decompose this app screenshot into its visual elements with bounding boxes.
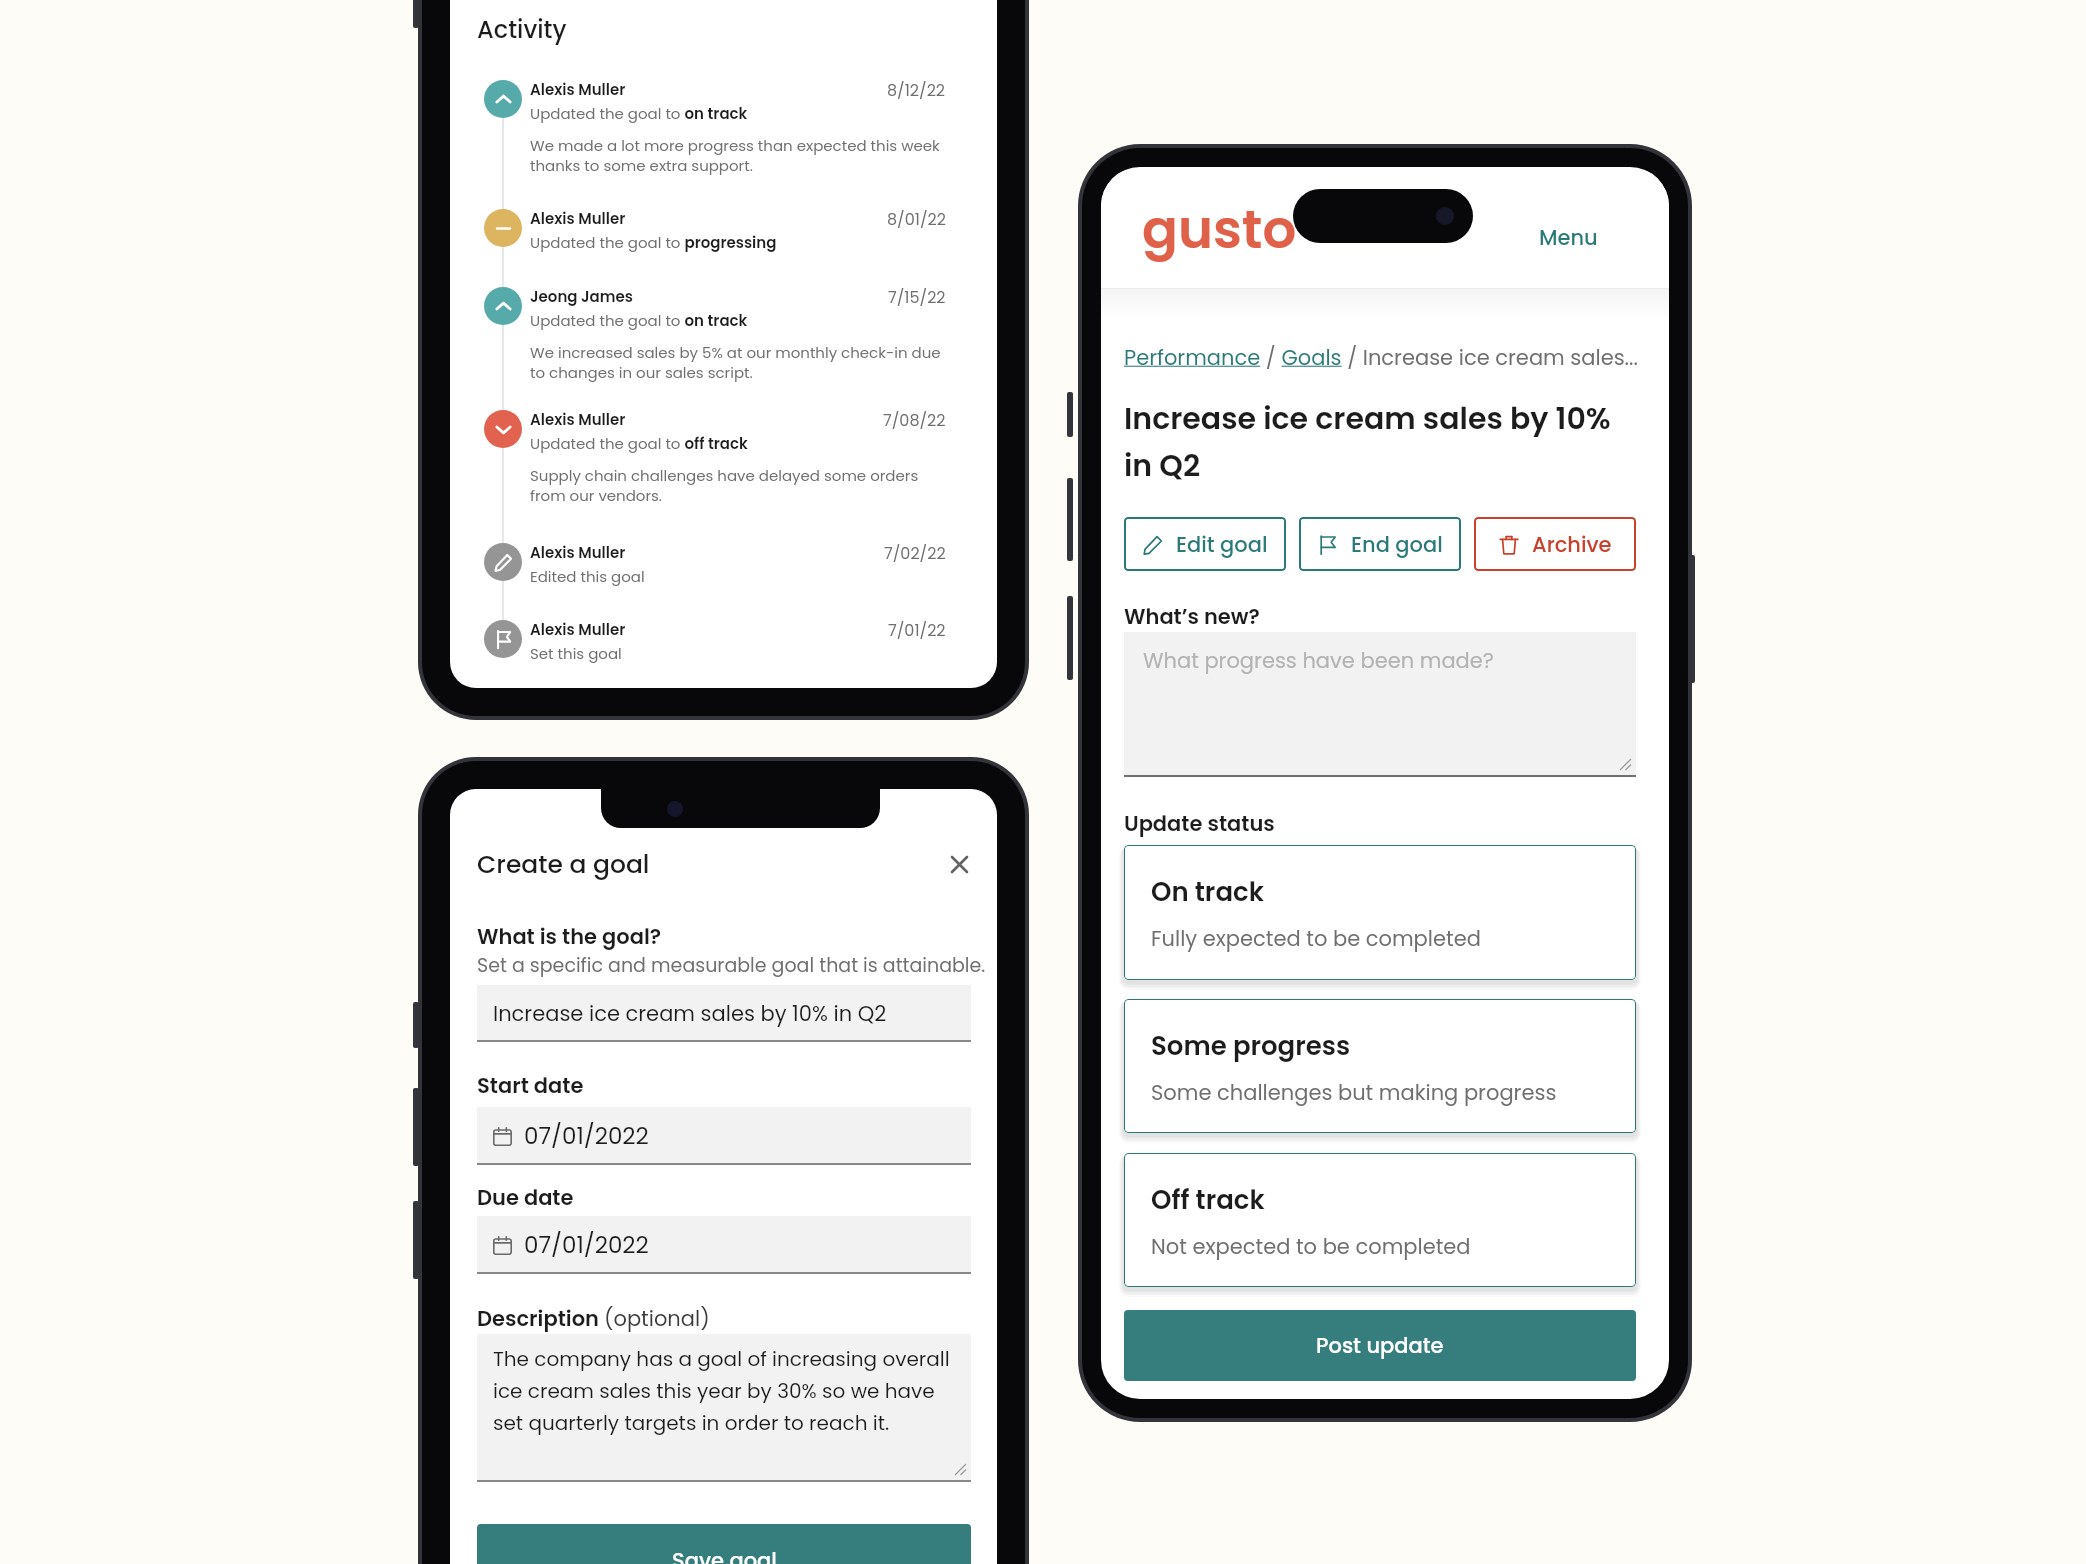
button[interactable]: 07/01/2022 — [477, 1216, 971, 1274]
staticText: The company has a goal of increasing ove… — [493, 1345, 961, 1437]
staticText: Some challenges but making progress — [1151, 1078, 1557, 1107]
staticText: Archive — [1532, 530, 1612, 559]
staticText: Performance / Goals / Increase ice cream… — [1124, 343, 1638, 372]
button[interactable]: Alexis Muller 8/01/22 — [484, 209, 522, 247]
staticText: Description (optional) — [477, 1304, 710, 1333]
staticText: 7/15/22 — [888, 286, 946, 308]
staticText: Alexis Muller — [530, 542, 626, 563]
button[interactable]: What progress have been made? — [1124, 632, 1636, 777]
staticText: Updated the goal to progressing — [530, 232, 777, 253]
staticText: Some progress — [1151, 1028, 1351, 1064]
button[interactable]: Archive — [1474, 517, 1636, 571]
button[interactable]: 07/01/2022 — [477, 1107, 971, 1165]
staticText: 7/02/22 — [884, 542, 946, 564]
staticText: Alexis Muller — [530, 208, 626, 229]
button[interactable]: Save goal — [477, 1524, 971, 1564]
staticText: Update status — [1124, 809, 1275, 838]
staticText: Updated the goal to off track — [530, 433, 748, 454]
staticText: Updated the goal to on track — [530, 103, 748, 124]
button[interactable]: The company has a goal of increasing ove… — [477, 1334, 971, 1482]
button[interactable]: Menu — [1539, 223, 1598, 252]
staticText: Edit goal — [1176, 530, 1268, 559]
staticText: Jeong James — [530, 286, 633, 307]
button[interactable]: Some progress — [1124, 999, 1636, 1133]
staticText: Post update — [1316, 1331, 1444, 1360]
staticText: Off track — [1151, 1182, 1265, 1218]
button[interactable]: Post update — [1124, 1310, 1636, 1381]
staticText: 7/01/22 — [888, 619, 946, 641]
staticText: What progress have been made? — [1143, 646, 1494, 675]
staticText: What’s new? — [1124, 602, 1260, 631]
staticText: Activity — [477, 13, 567, 47]
staticText: Set a specific and measurable goal that … — [477, 952, 986, 979]
staticText: 8/12/22 — [887, 79, 946, 101]
staticText: 8/01/22 — [887, 208, 946, 230]
staticText: gusto — [1142, 192, 1297, 266]
staticText: Start date — [477, 1071, 584, 1100]
button[interactable]: Close — [942, 847, 976, 881]
staticText: Save goal — [672, 1546, 777, 1564]
staticText: Due date — [477, 1183, 574, 1212]
button[interactable]: End goal — [1299, 517, 1461, 571]
staticText: Alexis Muller — [530, 79, 626, 100]
button[interactable]: On track — [1124, 845, 1636, 980]
staticText: Set this goal — [530, 643, 622, 664]
button[interactable]: Alexis Muller 7/01/22 — [484, 620, 522, 658]
staticText: What is the goal? — [477, 922, 662, 951]
staticText: Menu — [1539, 223, 1598, 252]
staticText: 07/01/2022 — [524, 1229, 649, 1261]
staticText: Alexis Muller — [530, 619, 626, 640]
staticText: Alexis Muller — [530, 409, 626, 430]
button[interactable]: Alexis Muller 7/02/22 — [484, 543, 522, 581]
staticText: Increase ice cream sales by 10% in Q2 — [493, 999, 887, 1028]
staticText: Fully expected to be completed — [1151, 924, 1481, 953]
staticText: We made a lot more progress than expecte… — [530, 135, 950, 177]
staticText: 07/01/2022 — [524, 1120, 649, 1152]
staticText: Updated the goal to on track — [530, 310, 748, 331]
staticText: Not expected to be completed — [1151, 1232, 1471, 1261]
staticText: Create a goal — [477, 847, 650, 882]
staticText: On track — [1151, 874, 1264, 910]
button[interactable]: Off track — [1124, 1153, 1636, 1287]
staticText: Supply chain challenges have delayed som… — [530, 465, 950, 507]
staticText: End goal — [1351, 530, 1443, 559]
button[interactable]: Edit goal — [1124, 517, 1286, 571]
staticText: 7/08/22 — [883, 409, 946, 431]
staticText: We increased sales by 5% at our monthly … — [530, 342, 950, 384]
button[interactable]: Jeong James 7/15/22 — [484, 287, 522, 325]
staticText: Increase ice cream sales by 10% in Q2 — [1124, 398, 1639, 486]
button[interactable]: Increase ice cream sales by 10% in Q2 — [477, 985, 971, 1042]
button[interactable]: Alexis Muller 8/12/22 — [484, 80, 522, 118]
button[interactable]: Alexis Muller 7/08/22 — [484, 410, 522, 448]
staticText: Edited this goal — [530, 566, 645, 587]
